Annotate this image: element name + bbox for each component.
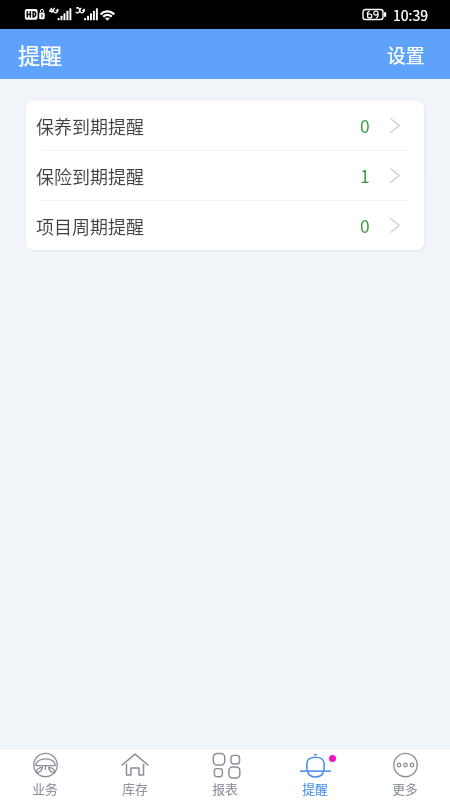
staticText: 提醒: [18, 38, 63, 70]
staticText: 0: [360, 213, 370, 238]
staticText: 保养到期提醒: [36, 113, 144, 139]
staticText: 10:39: [393, 5, 428, 25]
button[interactable]: 库存: [90, 750, 180, 800]
staticText: 项目周期提醒: [36, 213, 144, 239]
button[interactable]: 报表: [180, 750, 270, 800]
button[interactable]: 保险到期提醒: [26, 151, 424, 200]
button[interactable]: 业务: [0, 750, 90, 800]
staticText: 1: [360, 163, 370, 188]
staticText: 库存: [122, 779, 148, 798]
staticText: 更多: [392, 779, 418, 798]
button[interactable]: 提醒: [270, 750, 360, 800]
staticText: 设置: [387, 41, 425, 68]
staticText: 0: [360, 113, 370, 138]
button[interactable]: 保养到期提醒: [26, 101, 424, 150]
staticText: 报表: [212, 779, 238, 798]
staticText: 提醒: [302, 779, 328, 798]
staticText: 保险到期提醒: [36, 163, 144, 189]
button[interactable]: 项目周期提醒: [26, 201, 424, 250]
button[interactable]: 设置: [387, 41, 425, 68]
button[interactable]: 更多: [360, 750, 450, 800]
staticText: 业务: [32, 779, 58, 798]
